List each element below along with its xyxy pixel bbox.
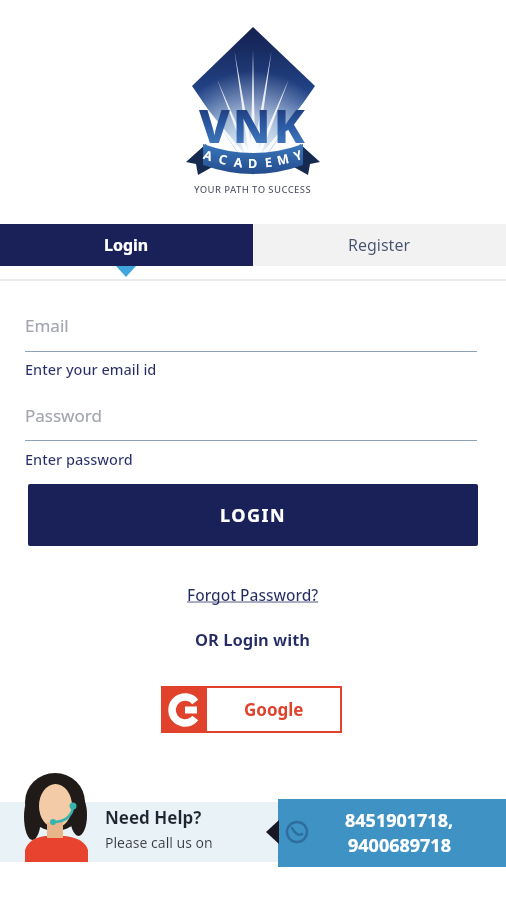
button[interactable]: Register (253, 224, 506, 266)
staticText: 9400689718 (348, 833, 451, 858)
button[interactable]: 8451901718, (278, 799, 506, 867)
staticText: Y (292, 146, 304, 164)
staticText: Please call us on (105, 833, 213, 852)
staticText: Register (348, 234, 411, 256)
button[interactable]: Google (162, 687, 341, 732)
staticText: 8451901718, (345, 808, 454, 833)
staticText: Google (244, 698, 304, 721)
staticText: YOUR PATH TO SUCCESS (194, 183, 312, 196)
staticText: Enter your email id (25, 359, 157, 379)
staticText: Password (25, 404, 102, 427)
staticText: A (233, 154, 244, 170)
staticText: Enter password (25, 449, 133, 469)
staticText: D (248, 155, 258, 171)
staticText: VNK (199, 94, 308, 157)
button[interactable]: LOGIN (28, 484, 478, 546)
staticText: OR Login with (195, 628, 311, 650)
staticText: Need Help? (105, 806, 202, 829)
staticText: E (264, 154, 273, 170)
staticText: C (217, 150, 229, 168)
staticText: LOGIN (220, 503, 287, 528)
staticText: Email (25, 314, 69, 337)
staticText: M (275, 150, 291, 168)
staticText: Login (104, 234, 149, 256)
button[interactable]: Login (0, 224, 253, 266)
staticText: A (202, 146, 215, 164)
button[interactable]: Forgot Password? (187, 584, 319, 605)
